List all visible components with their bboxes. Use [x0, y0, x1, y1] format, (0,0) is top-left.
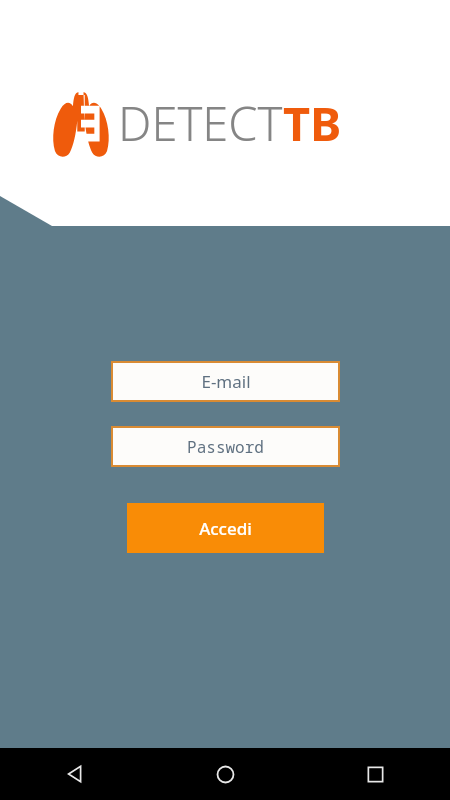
staticText: Accedi	[199, 517, 252, 540]
button[interactable]: Password	[113, 428, 338, 465]
button[interactable]: Accedi	[127, 503, 324, 553]
button[interactable]: Home	[150, 748, 300, 800]
staticText: E-mail	[201, 370, 251, 393]
button[interactable]: Back	[0, 748, 150, 800]
button[interactable]: Recent apps	[300, 748, 450, 800]
staticText: DETECT	[118, 91, 283, 155]
button[interactable]: E-mail	[113, 363, 338, 400]
staticText: TB	[283, 91, 342, 155]
staticText: Password	[187, 436, 264, 458]
